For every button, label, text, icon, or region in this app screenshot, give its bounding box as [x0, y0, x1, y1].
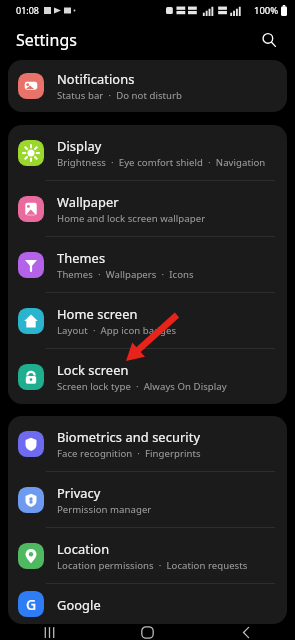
staticText: Biometrics and security	[57, 428, 201, 445]
button[interactable]: Lock screen	[8, 349, 287, 404]
staticText: Google	[57, 596, 101, 613]
staticText: Themes · Wallpapers · Icons	[57, 268, 194, 281]
staticText: Permission manager	[57, 503, 152, 516]
staticText: Wallpaper	[57, 193, 119, 210]
staticText: Privacy	[57, 484, 101, 501]
staticText: Status bar · Do not disturb	[57, 89, 183, 102]
button[interactable]: Wallpaper	[8, 181, 287, 236]
staticText: Location permissions · Location requests	[57, 559, 248, 572]
button[interactable]: Home	[124, 624, 170, 640]
staticText: Settings	[16, 29, 77, 51]
button[interactable]: Notifications	[8, 60, 287, 112]
staticText: Notifications	[57, 70, 135, 87]
button[interactable]: Themes	[8, 237, 287, 292]
staticText: Brightness · Eye comfort shield · Naviga…	[57, 156, 275, 169]
button[interactable]: Biometrics and security	[8, 416, 287, 471]
staticText: Face recognition · Fingerprints	[57, 447, 201, 460]
staticText: G	[26, 595, 37, 614]
button[interactable]: Location	[8, 528, 287, 583]
button[interactable]: Display	[8, 125, 287, 180]
button[interactable]: Back	[223, 624, 269, 640]
staticText: Layout · App icon badges	[57, 324, 177, 337]
staticText: 100%	[254, 4, 279, 17]
staticText: Display	[57, 137, 102, 154]
staticText: Lock screen	[57, 361, 129, 378]
button[interactable]: Privacy	[8, 472, 287, 527]
staticText: Themes	[57, 249, 106, 266]
button[interactable]: Home screen	[8, 293, 287, 348]
staticText: Screen lock type · Always On Display	[57, 380, 227, 393]
staticText: Home and lock screen wallpaper	[57, 212, 206, 225]
staticText: Location	[57, 540, 110, 557]
button[interactable]: Recents	[26, 624, 72, 640]
button[interactable]: G	[8, 584, 287, 624]
staticText: Home screen	[57, 305, 138, 322]
button[interactable]: Search	[253, 24, 285, 56]
staticText: 01:08	[16, 4, 40, 16]
